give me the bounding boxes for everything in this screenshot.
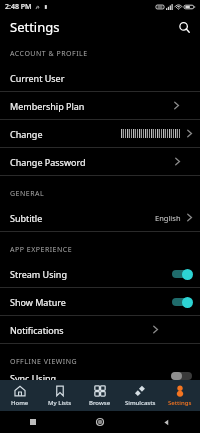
button[interactable]: Toggle off <box>171 372 193 380</box>
staticText: 2:48 PM <box>5 2 32 12</box>
staticText: Change Email <box>10 128 65 140</box>
staticText: Browse <box>89 399 111 407</box>
staticText: GENERAL <box>10 189 45 199</box>
staticText: Settings <box>10 18 60 36</box>
staticText: Simulcasts <box>125 399 156 407</box>
staticText: Current User <box>10 72 65 84</box>
staticText: Subtitle Language <box>10 212 82 224</box>
button[interactable]: Toggle on <box>171 295 193 309</box>
button[interactable]: Back <box>133 411 200 433</box>
button[interactable]: Settings <box>160 380 200 411</box>
button[interactable]: Browse <box>80 380 120 411</box>
button[interactable]: Recents <box>0 411 66 433</box>
staticText: Change Password <box>10 156 86 168</box>
button[interactable]: Change Password <box>0 148 200 175</box>
staticText: English <box>155 213 181 223</box>
staticText: Stream Using Cellular <box>10 268 90 280</box>
button[interactable]: Search <box>174 17 194 37</box>
staticText: Notifications <box>10 324 64 336</box>
staticText: Show Mature Content <box>10 296 90 308</box>
button[interactable]: My Lists <box>40 380 80 411</box>
button[interactable]: Change Email <box>0 120 200 147</box>
button[interactable]: Simulcasts <box>120 380 160 411</box>
staticText: Membership Plan <box>10 100 85 112</box>
staticText: Sync Using Cellular <box>10 372 90 380</box>
button[interactable]: Home <box>66 411 133 433</box>
button[interactable]: Sync Using Cellular <box>0 372 200 380</box>
button[interactable]: Home <box>0 380 40 411</box>
staticText: My Lists <box>48 399 72 407</box>
button[interactable]: Toggle on <box>171 267 193 281</box>
staticText: OFFLINE VIEWING <box>10 357 78 367</box>
button[interactable]: Notifications <box>0 316 200 343</box>
button[interactable]: Show Mature Content <box>0 288 200 315</box>
button[interactable]: Subtitle Language <box>0 204 200 231</box>
button[interactable]: Current User <box>0 64 200 91</box>
staticText: Settings <box>168 399 192 407</box>
button[interactable]: Stream Using Cellular <box>0 260 200 287</box>
staticText: APP EXPERIENCE <box>10 245 73 255</box>
staticText: ACCOUNT & PROFILE <box>10 49 88 59</box>
button[interactable]: Membership Plan <box>0 92 200 119</box>
staticText: Home <box>11 399 29 407</box>
